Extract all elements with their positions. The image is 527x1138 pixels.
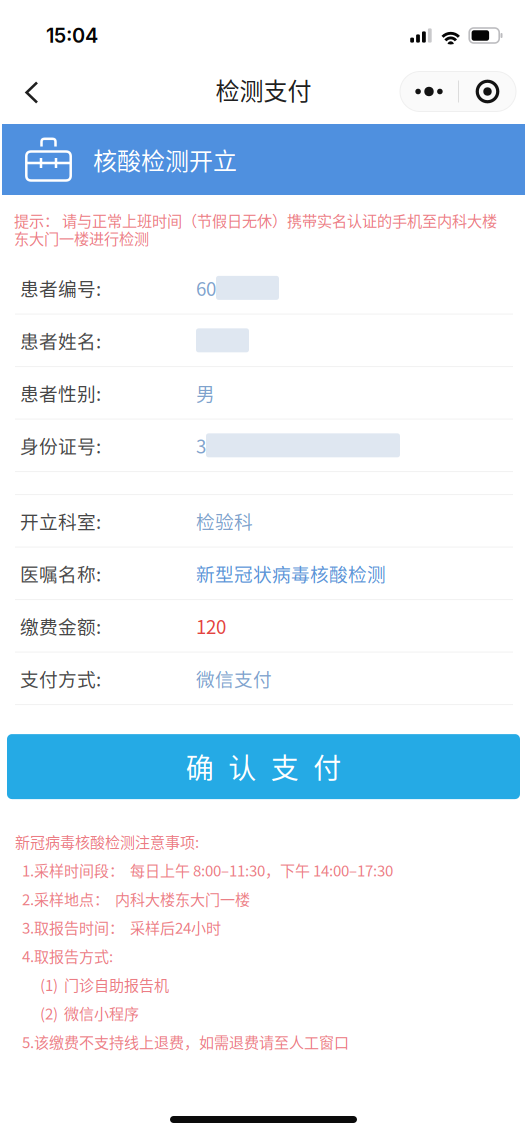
staticText: 3: [196, 432, 206, 459]
staticText: 15:04: [46, 23, 98, 48]
staticText: 支付方式:: [20, 665, 101, 692]
staticText: 核酸检测开立: [93, 142, 237, 177]
staticText: 认: [228, 746, 256, 787]
staticText: 医嘱名称:: [20, 560, 101, 587]
staticText: 微信支付: [196, 665, 272, 692]
button[interactable]: Back: [0, 68, 54, 116]
staticText: 检验科: [196, 507, 253, 534]
staticText: 患者姓名:: [20, 327, 101, 354]
staticText: 缴费金额:: [20, 612, 101, 639]
staticText: 新型冠状病毒核酸检测: [196, 560, 386, 587]
staticText: 检测支付: [215, 72, 311, 107]
staticText: (1) 门诊自助报告机: [40, 973, 169, 995]
staticText: 患者性别:: [20, 379, 101, 406]
staticText: 1.采样时间段： 每日上午 8:00–11:30，下午 14:00–17:30: [22, 859, 393, 881]
staticText: 2.采样地点： 内科大楼东大门一楼: [22, 888, 250, 909]
button[interactable]: 确: [7, 734, 520, 799]
staticText: 付: [313, 746, 341, 787]
staticText: 4.取报告方式:: [22, 945, 113, 967]
staticText: 确: [186, 746, 214, 787]
staticText: 男: [196, 379, 215, 406]
staticText: 开立科室:: [20, 507, 101, 534]
staticText: 支: [271, 746, 299, 787]
staticText: 身份证号:: [20, 432, 101, 459]
staticText: 5.该缴费不支持线上退费，如需退费请至人工窗口: [22, 1031, 349, 1052]
button[interactable]: More: [400, 71, 458, 111]
staticText: 提示： 请与正常上班时间（节假日无休）携带实名认证的手机至内科大楼: [14, 209, 497, 231]
staticText: 3.取报告时间： 采样后24小时: [22, 916, 221, 938]
staticText: 东大门一楼进行检测: [14, 227, 149, 249]
staticText: 新冠病毒核酸检测注意事项:: [15, 830, 199, 852]
staticText: (2) 微信小程序: [40, 1002, 139, 1024]
staticText: 患者编号:: [20, 274, 101, 301]
staticText: 60: [196, 274, 216, 301]
button[interactable]: Close: [459, 71, 516, 111]
staticText: 120: [196, 612, 226, 639]
